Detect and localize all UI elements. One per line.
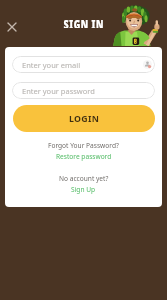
staticText: SIGN IN xyxy=(64,15,104,28)
button[interactable]: Close xyxy=(1,16,22,37)
button[interactable]: Enter your email xyxy=(12,56,155,73)
button[interactable]: Forgot Your Password? xyxy=(5,141,162,161)
staticText: Sign Up xyxy=(71,185,96,194)
button[interactable]: No account yet? xyxy=(5,174,162,194)
button[interactable]: LOGIN xyxy=(13,105,155,132)
button[interactable]: Autofill xyxy=(143,60,152,69)
staticText: Enter your email xyxy=(22,60,81,70)
button[interactable]: Enter your password xyxy=(12,82,155,99)
staticText: No account yet? xyxy=(59,174,109,183)
staticText: Forgot Your Password? xyxy=(48,141,119,150)
staticText: LOGIN xyxy=(69,113,100,125)
staticText: Restore password xyxy=(56,152,112,161)
staticText: Enter your password xyxy=(22,86,95,96)
